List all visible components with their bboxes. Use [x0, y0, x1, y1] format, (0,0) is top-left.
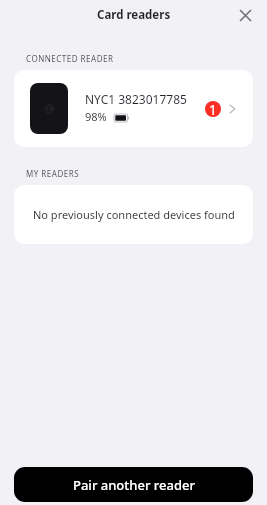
staticText: MY READERS: [26, 168, 80, 179]
staticText: No previously connected devices found: [33, 207, 235, 222]
staticText: CONNECTED READER: [26, 53, 114, 64]
staticText: Card readers: [97, 7, 171, 23]
button[interactable]: Pair another reader: [14, 467, 253, 502]
staticText: NYC1 3823017785: [85, 91, 187, 107]
button[interactable]: NYC1 3823017785: [14, 70, 253, 147]
staticText: Pair another reader: [73, 476, 195, 494]
staticText: 1: [209, 101, 217, 117]
staticText: 98%: [85, 109, 107, 124]
button[interactable]: Close: [233, 3, 257, 27]
